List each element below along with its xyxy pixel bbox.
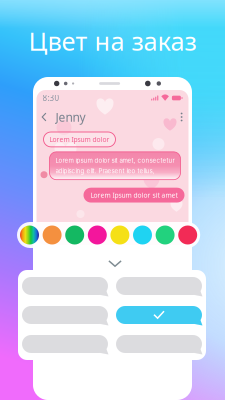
button[interactable]: Collapse — [103, 255, 127, 272]
staticText: Цвет на заказ — [28, 24, 196, 58]
button[interactable]: Back — [39, 107, 49, 126]
button[interactable]: Colour swatch — [88, 225, 107, 244]
button[interactable]: More options — [178, 110, 185, 124]
button[interactable]: Colour swatch — [156, 225, 175, 244]
staticText: Lorem ipsum dolor sit amet, consectetur — [55, 157, 174, 164]
staticText: 8:30 — [42, 93, 59, 103]
button[interactable]: Colour swatch — [65, 225, 84, 244]
staticText: Lorem Ipsum dolor — [49, 135, 109, 144]
staticText: adipiscing elit. Praesent leo tellus, — [55, 167, 154, 175]
button[interactable]: Colour swatch — [178, 225, 197, 244]
staticText: Lorem Ipsum dolor sit amet — [90, 191, 177, 200]
button[interactable]: Colour swatch — [110, 225, 129, 244]
button[interactable]: Rainbow colour — [20, 225, 39, 244]
button[interactable]: Colour swatch — [43, 225, 62, 244]
staticText: Jenny — [55, 109, 85, 125]
button[interactable]: Colour swatch — [133, 225, 152, 244]
